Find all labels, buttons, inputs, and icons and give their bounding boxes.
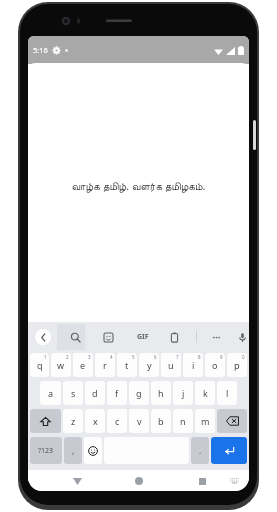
button[interactable]: More options <box>205 322 227 352</box>
staticText: , <box>72 445 75 456</box>
staticText: i <box>192 359 195 371</box>
staticText: n <box>180 415 186 427</box>
button[interactable]: e <box>73 353 93 377</box>
button[interactable]: q <box>30 353 49 377</box>
staticText: e <box>80 359 86 371</box>
staticText: ?123 <box>38 446 54 456</box>
staticText: m <box>201 415 210 427</box>
button[interactable]: n <box>173 409 193 433</box>
staticText: h <box>158 387 164 399</box>
staticText: r <box>103 359 107 371</box>
staticText: k <box>203 387 208 399</box>
staticText: 5 <box>132 354 135 360</box>
button[interactable]: x <box>85 409 105 433</box>
button[interactable]: Home <box>130 472 148 490</box>
button[interactable]: Period <box>191 437 209 464</box>
staticText: 1 <box>44 354 47 360</box>
button[interactable]: d <box>85 381 105 405</box>
button[interactable]: g <box>129 381 149 405</box>
staticText: l <box>226 387 229 399</box>
button[interactable]: ?123 <box>30 437 62 464</box>
staticText: f <box>115 387 119 399</box>
button[interactable]: s <box>63 381 83 405</box>
button[interactable]: h <box>151 381 171 405</box>
button[interactable]: Stickers <box>97 322 119 352</box>
button[interactable]: Voice input <box>231 322 249 352</box>
staticText: 9 <box>220 354 223 360</box>
staticText: s <box>71 387 76 399</box>
button[interactable]: b <box>151 409 171 433</box>
button[interactable]: p <box>227 353 247 377</box>
button[interactable]: Back <box>35 329 51 345</box>
staticText: j <box>182 387 185 399</box>
button[interactable]: Search <box>64 322 86 352</box>
staticText: z <box>71 415 76 427</box>
staticText: 4 <box>110 354 113 360</box>
staticText: 5:16 <box>33 45 48 55</box>
staticText: v <box>137 415 142 427</box>
button[interactable]: Backspace <box>217 409 247 433</box>
button[interactable]: Enter <box>211 437 247 464</box>
button[interactable]: Emoji <box>84 437 102 464</box>
staticText: g <box>136 387 142 399</box>
staticText: c <box>115 415 120 427</box>
staticText: o <box>212 359 218 371</box>
button[interactable]: z <box>63 409 83 433</box>
button[interactable]: r <box>95 353 115 377</box>
button[interactable]: GIF <box>130 322 156 352</box>
staticText: u <box>168 359 174 371</box>
button[interactable]: c <box>107 409 127 433</box>
staticText: 6 <box>154 354 157 360</box>
button[interactable]: o <box>205 353 225 377</box>
button[interactable]: Recents <box>193 472 211 490</box>
staticText: . <box>199 445 202 456</box>
staticText: w <box>57 359 65 371</box>
button[interactable]: i <box>183 353 203 377</box>
staticText: t <box>125 359 129 371</box>
button[interactable]: u <box>161 353 181 377</box>
staticText: y <box>147 359 152 371</box>
staticText: a <box>48 387 54 399</box>
button[interactable]: t <box>117 353 137 377</box>
button[interactable]: Shift <box>30 409 61 433</box>
staticText: 7 <box>176 354 179 360</box>
staticText: q <box>37 359 43 371</box>
staticText: வாழ்க தமிழ். வளர்க தமிழகம். <box>28 179 249 193</box>
button[interactable]: Clipboard <box>163 322 185 352</box>
button[interactable]: k <box>195 381 215 405</box>
staticText: 0 <box>242 354 245 360</box>
staticText: d <box>92 387 98 399</box>
button[interactable]: a <box>40 381 61 405</box>
button[interactable]: w <box>51 353 71 377</box>
button[interactable]: m <box>195 409 215 433</box>
button[interactable]: Comma <box>64 437 82 464</box>
button[interactable]: v <box>129 409 149 433</box>
staticText: 8 <box>198 354 201 360</box>
button[interactable]: y <box>139 353 159 377</box>
staticText: 2 <box>66 354 69 360</box>
button[interactable]: j <box>173 381 193 405</box>
staticText: GIF <box>137 332 149 342</box>
staticText: 3 <box>88 354 91 360</box>
staticText: x <box>93 415 98 427</box>
staticText: p <box>234 359 240 371</box>
button[interactable]: f <box>107 381 127 405</box>
button[interactable]: l <box>217 381 237 405</box>
staticText: b <box>158 415 164 427</box>
button[interactable]: Back <box>68 472 86 490</box>
